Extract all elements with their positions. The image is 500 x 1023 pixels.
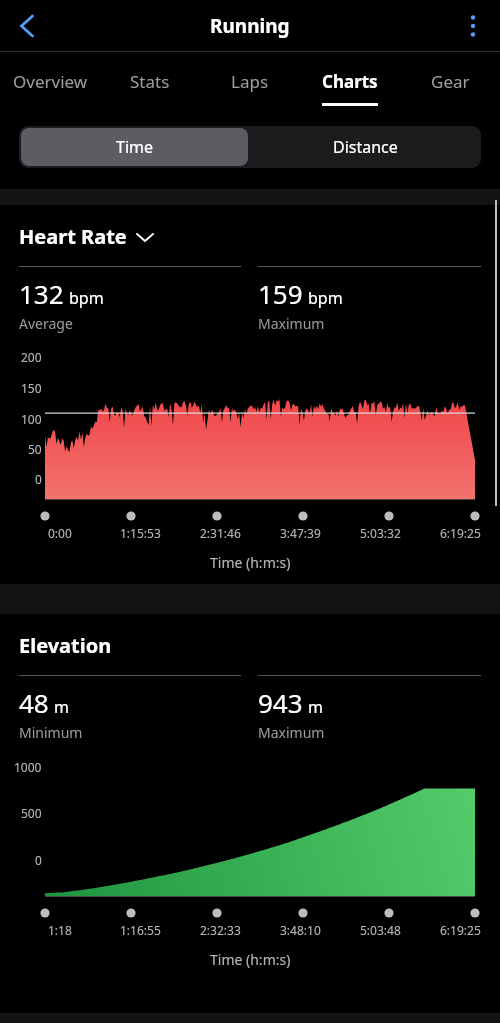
button[interactable]: Distance	[250, 126, 481, 168]
staticText: Laps	[231, 70, 269, 93]
staticText: Time	[116, 136, 154, 158]
button[interactable]: More options	[451, 4, 495, 48]
staticText: 132	[19, 276, 64, 311]
staticText: Gear	[431, 70, 470, 93]
staticText: 0	[35, 852, 42, 868]
staticText: Maximum	[258, 723, 325, 742]
staticText: 5:03:48	[360, 922, 401, 938]
staticText: 159	[258, 276, 303, 311]
staticText: 2:32:33	[200, 922, 241, 938]
staticText: 500	[21, 805, 42, 821]
button[interactable]: Charts	[300, 52, 400, 110]
staticText: Stats	[130, 70, 170, 93]
staticText: 1000	[14, 759, 42, 775]
staticText: Running	[210, 13, 290, 39]
button[interactable]: Back	[5, 4, 49, 48]
staticText: 943	[258, 685, 303, 720]
staticText: Time (h:m:s)	[210, 950, 291, 969]
staticText: 0:00	[48, 525, 72, 541]
staticText: 3:47:39	[280, 525, 321, 541]
button[interactable]: Overview	[0, 52, 100, 110]
staticText: 0	[35, 471, 42, 487]
staticText: Average	[19, 314, 73, 333]
staticText: 3:48:10	[280, 922, 321, 938]
button[interactable]: Elevation	[19, 632, 112, 659]
button[interactable]: Stats	[100, 52, 200, 110]
button[interactable]: Laps	[200, 52, 300, 110]
staticText: 5:03:32	[360, 525, 401, 541]
staticText: bpm	[308, 287, 343, 309]
staticText: 1:18	[48, 922, 72, 938]
staticText: m	[308, 696, 323, 718]
staticText: Distance	[333, 136, 398, 158]
staticText: Minimum	[19, 723, 83, 742]
staticText: Elevation	[19, 632, 112, 659]
staticText: 6:19:25	[440, 525, 481, 541]
staticText: 150	[21, 380, 42, 396]
staticText: Overview	[13, 70, 88, 93]
staticText: 100	[21, 411, 42, 427]
button[interactable]: Heart Rate	[19, 223, 154, 250]
staticText: 1:16:55	[120, 922, 161, 938]
staticText: 2:31:46	[200, 525, 241, 541]
button[interactable]: Time	[21, 128, 248, 166]
staticText: m	[54, 696, 69, 718]
staticText: Maximum	[258, 314, 325, 333]
staticText: 1:15:53	[120, 525, 161, 541]
staticText: bpm	[69, 287, 104, 309]
staticText: 6:19:25	[440, 922, 481, 938]
button[interactable]: Gear	[400, 52, 500, 110]
staticText: Time (h:m:s)	[210, 553, 291, 572]
staticText: Charts	[322, 70, 378, 93]
staticText: Heart Rate	[19, 223, 127, 250]
staticText: 200	[21, 349, 42, 365]
staticText: 48	[19, 685, 49, 720]
staticText: 50	[28, 441, 42, 457]
